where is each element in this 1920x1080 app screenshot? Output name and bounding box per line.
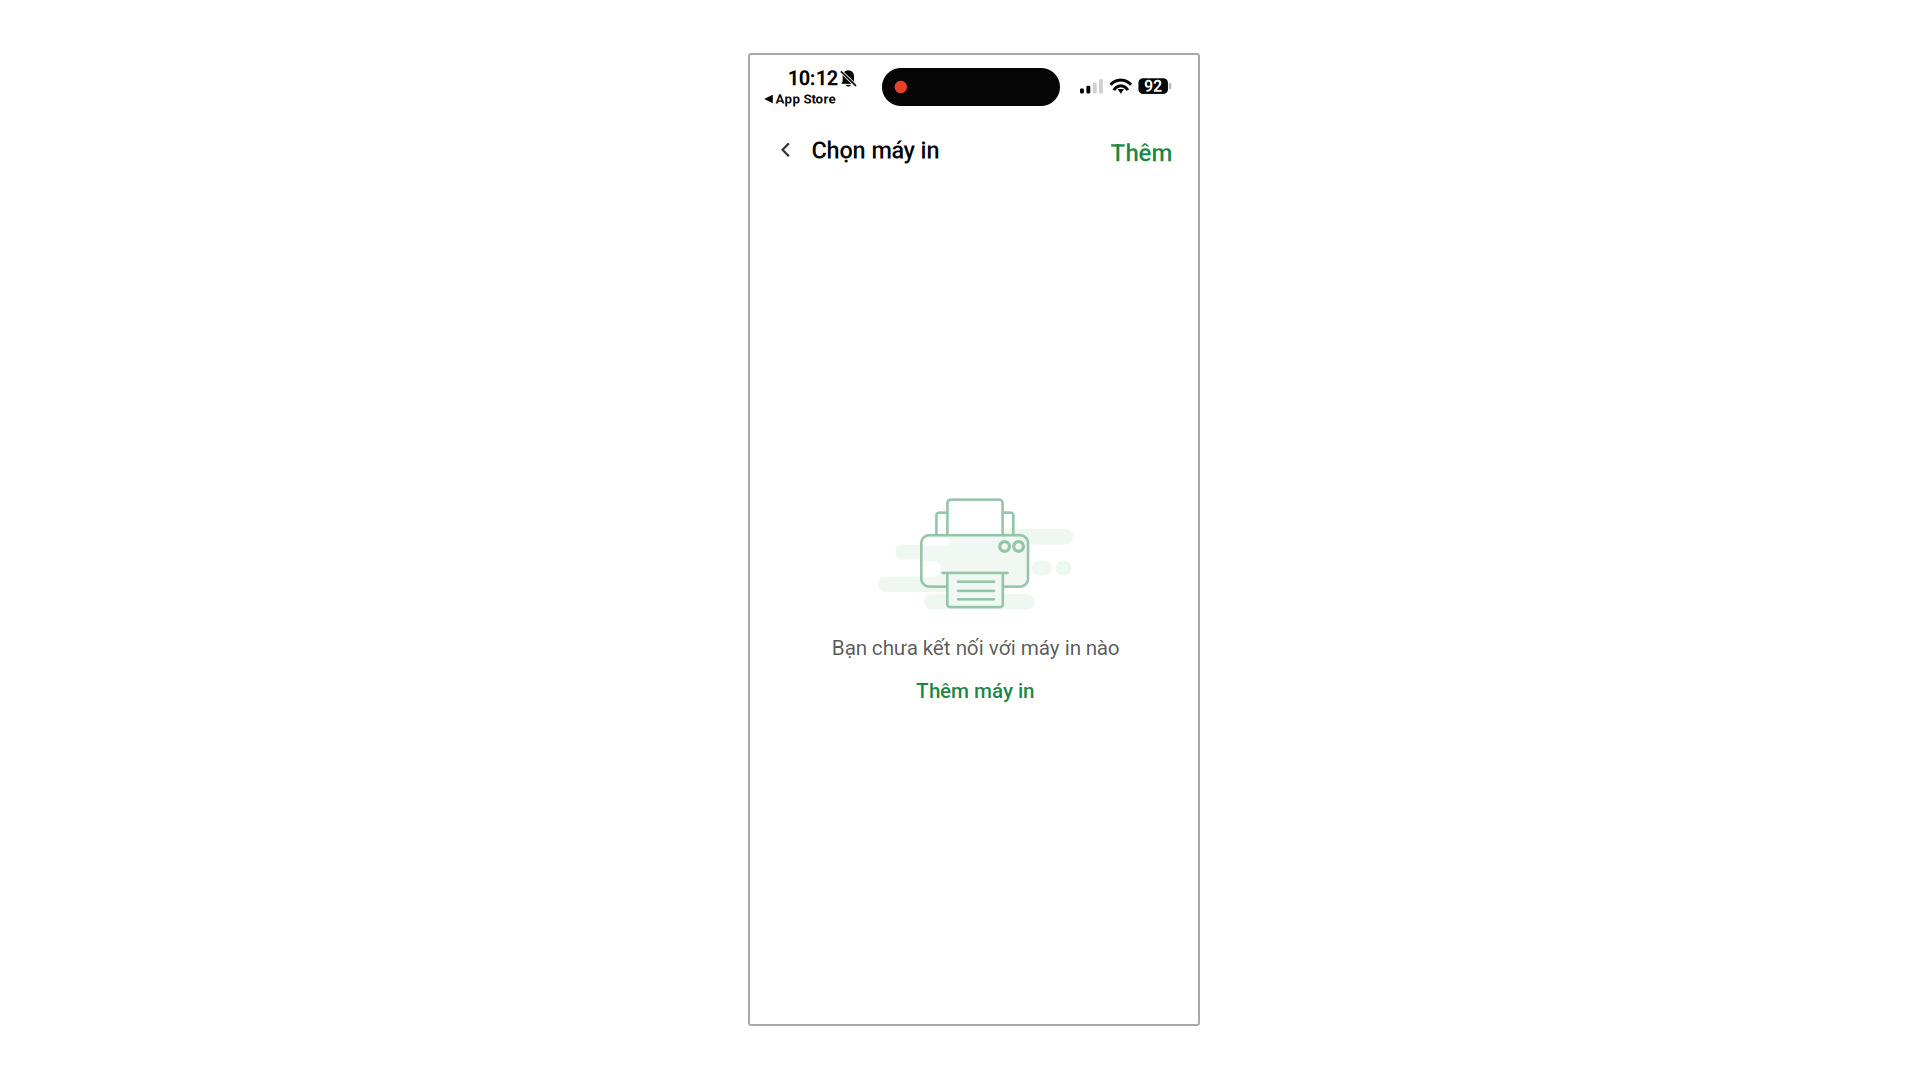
staticText: Chọn máy in <box>811 137 939 164</box>
staticText: 92 <box>1144 77 1162 96</box>
staticText: App Store <box>775 91 835 107</box>
button[interactable]: Back <box>766 128 805 171</box>
staticText: 10:12 <box>788 67 838 90</box>
staticText: Thêm <box>1110 139 1172 167</box>
button[interactable]: Thêm máy in <box>898 668 1053 714</box>
staticText: Bạn chưa kết nối với máy in nào <box>832 636 1120 660</box>
staticText: Thêm máy in <box>916 679 1035 703</box>
button[interactable]: Thêm <box>1098 128 1184 178</box>
